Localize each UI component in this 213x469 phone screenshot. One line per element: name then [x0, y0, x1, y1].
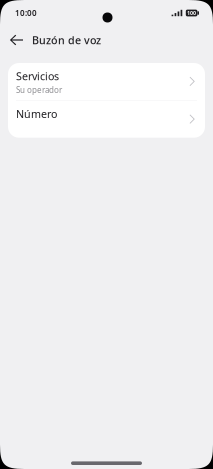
button[interactable]: Servicios: [8, 63, 205, 100]
staticText: 100: [187, 9, 196, 17]
staticText: Servicios: [16, 69, 59, 83]
button[interactable]: Número: [8, 101, 205, 138]
staticText: Buzón de voz: [32, 33, 101, 47]
staticText: 10:00: [15, 8, 37, 18]
staticText: Su operador: [16, 85, 62, 95]
button[interactable]: Back: [0, 26, 32, 54]
staticText: Número: [16, 107, 57, 121]
